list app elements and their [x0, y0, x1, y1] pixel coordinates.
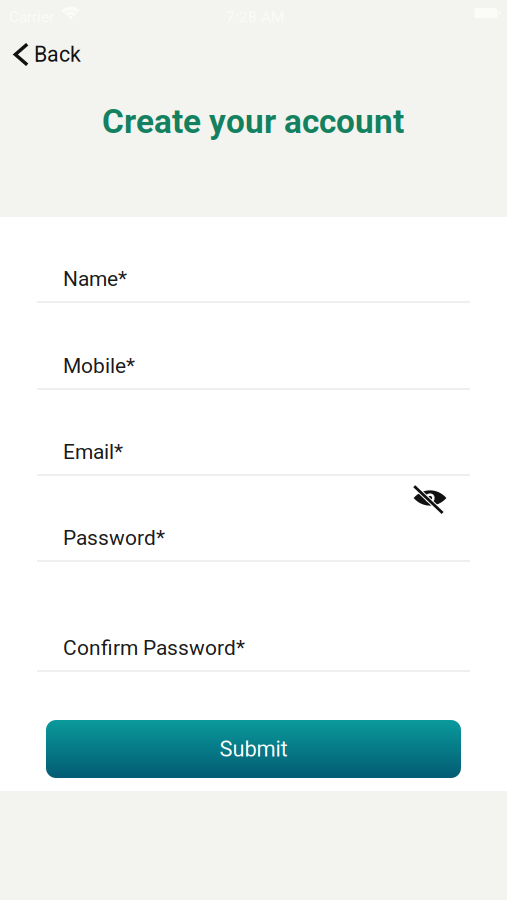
button[interactable]: Confirm Password* — [37, 624, 470, 672]
button[interactable]: Show password — [406, 474, 454, 522]
staticText: Submit — [219, 736, 287, 762]
button[interactable]: Submit — [46, 720, 461, 778]
staticText: Confirm Password* — [63, 635, 245, 660]
button[interactable]: Back — [2, 33, 92, 76]
button[interactable]: Email* — [37, 428, 470, 476]
button[interactable]: Password* — [37, 514, 470, 562]
staticText: Create your account — [102, 102, 404, 141]
staticText: Name* — [63, 266, 127, 291]
staticText: Password* — [63, 525, 165, 550]
button[interactable]: Name* — [37, 255, 470, 303]
button[interactable]: Mobile* — [37, 342, 470, 390]
staticText: Mobile* — [63, 353, 135, 378]
staticText: Back — [34, 42, 81, 67]
staticText: Email* — [63, 439, 123, 464]
